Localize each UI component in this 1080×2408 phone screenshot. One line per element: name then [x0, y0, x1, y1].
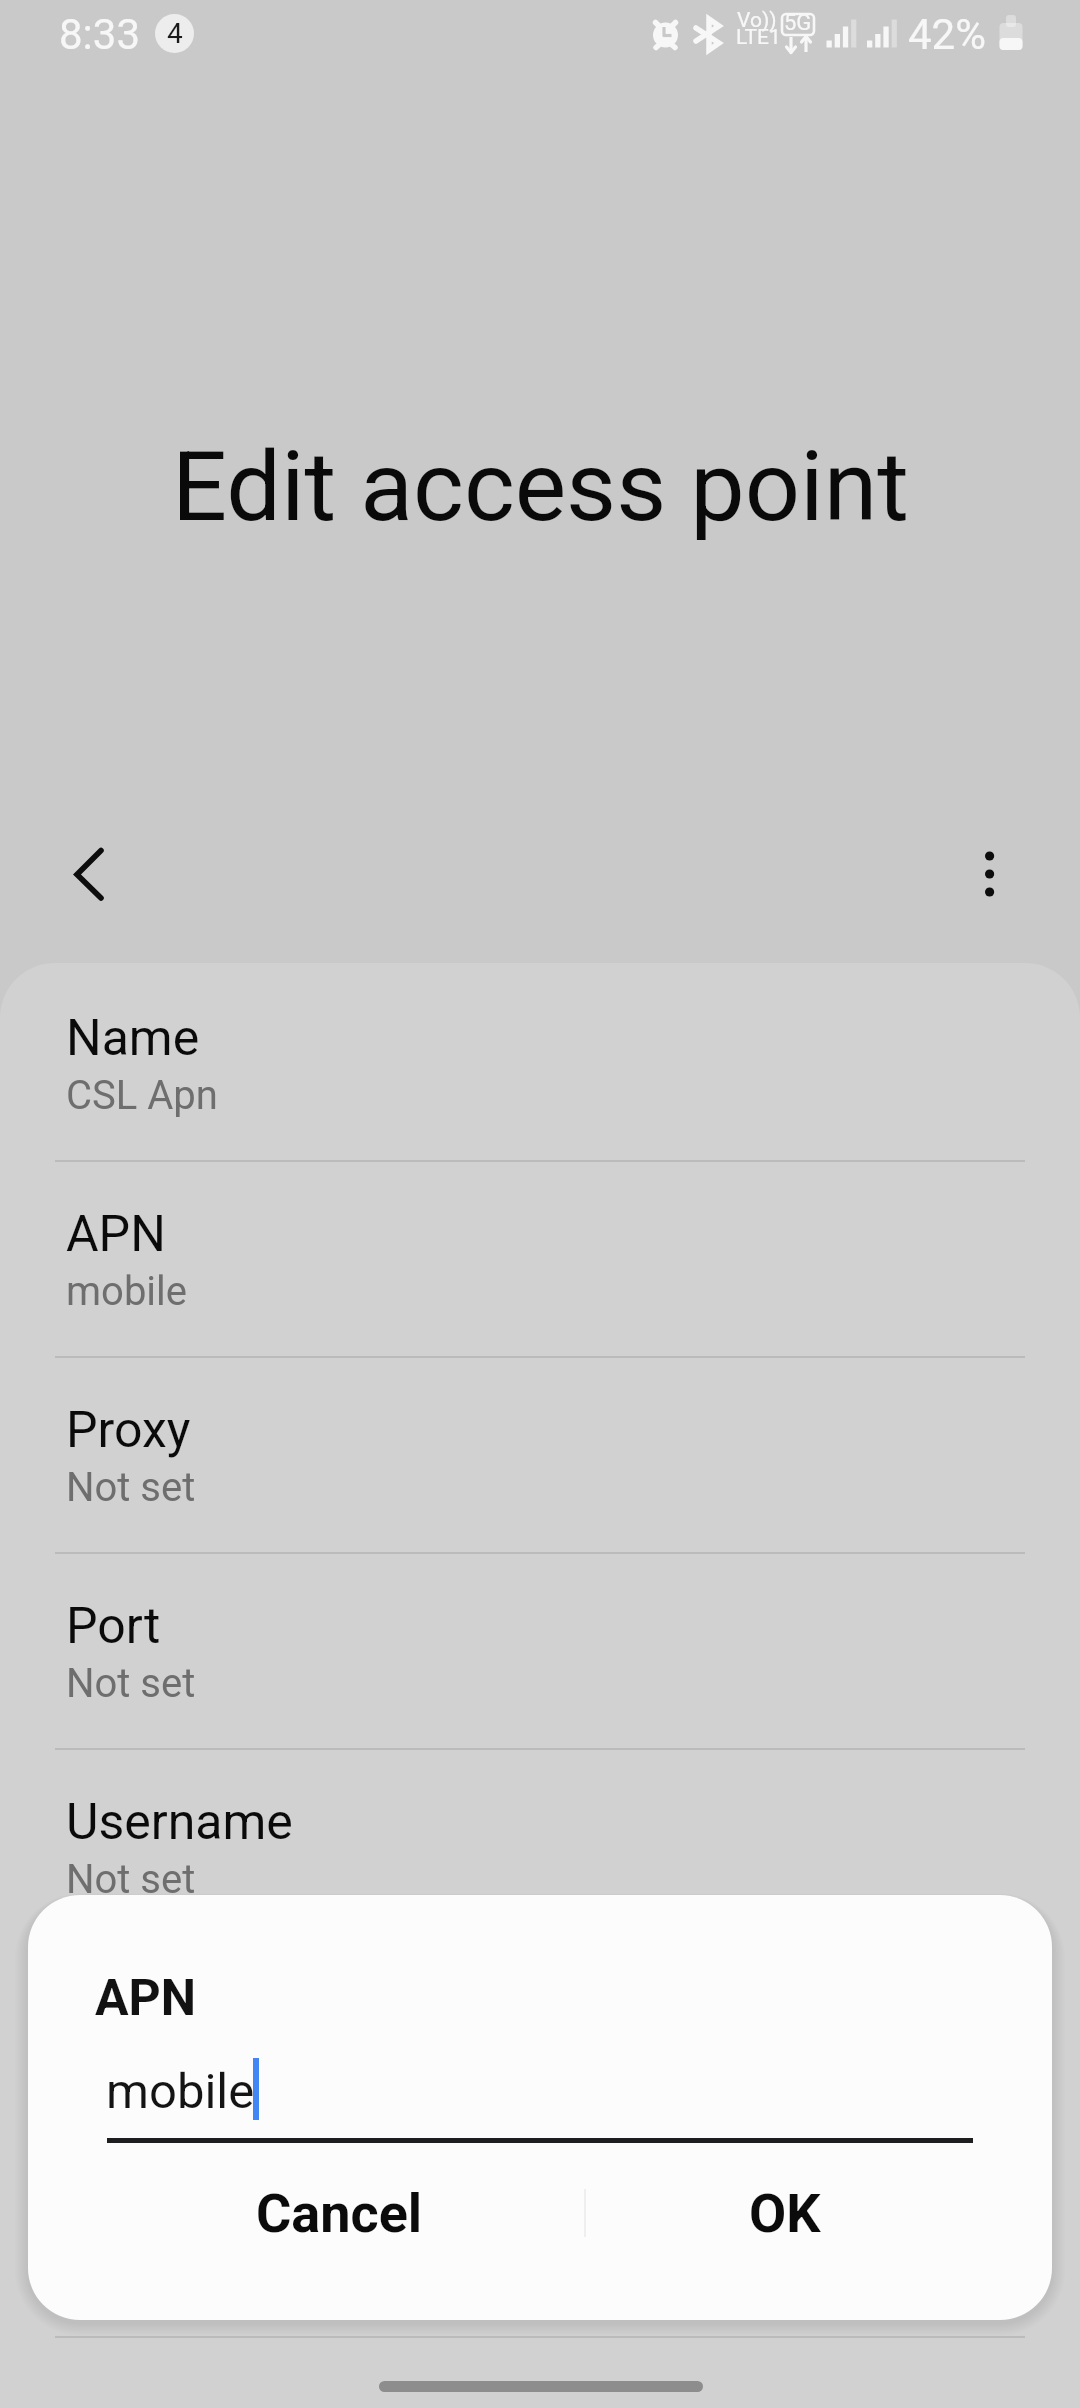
button[interactable]: OK	[585, 2163, 985, 2263]
staticText: Vo))	[737, 8, 777, 33]
button[interactable]: Server	[0, 2139, 1080, 2335]
staticText: 5G	[784, 10, 812, 36]
staticText: Not set	[66, 1856, 196, 1903]
staticText: 8:33	[59, 10, 140, 59]
staticText: Not set	[66, 1464, 196, 1511]
button[interactable]: Password	[0, 1943, 1080, 2139]
button[interactable]: Username	[0, 1747, 1080, 1943]
staticText: CSL Apn	[66, 1072, 218, 1119]
staticText: Not set	[66, 2052, 196, 2099]
button[interactable]: Navigate up	[20, 818, 132, 930]
staticText: mobile	[106, 2063, 255, 2120]
staticText: Name	[66, 1009, 200, 1068]
staticText: OK	[749, 2182, 821, 2245]
staticText: Cancel	[256, 2182, 423, 2245]
staticText: 4	[167, 17, 183, 50]
button[interactable]: Cancel	[94, 2163, 585, 2263]
staticText: LTE1	[736, 25, 781, 50]
staticText: 42%	[908, 10, 986, 59]
staticText: mobile	[66, 1268, 188, 1315]
staticText: Edit access point	[172, 430, 909, 544]
staticText: Proxy	[66, 1401, 191, 1460]
staticText: Username	[66, 1793, 293, 1852]
button[interactable]: Port	[0, 1551, 1080, 1747]
button[interactable]: Proxy	[0, 1355, 1080, 1551]
button[interactable]: APN	[0, 1159, 1080, 1355]
staticText: Port	[66, 1597, 161, 1656]
staticText: APN	[95, 1969, 197, 2028]
staticText: Not set	[66, 1660, 196, 1707]
staticText: APN	[66, 1205, 166, 1264]
button[interactable]: More options	[933, 818, 1045, 930]
button[interactable]: Name	[0, 963, 1080, 1159]
staticText: Password	[66, 1989, 287, 2048]
